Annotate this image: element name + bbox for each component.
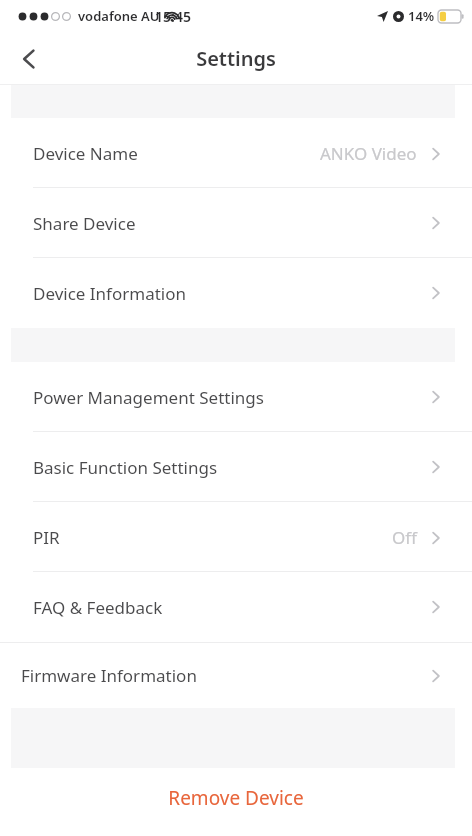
button[interactable]: Device Name <box>0 118 472 188</box>
button[interactable]: Back <box>0 32 58 85</box>
staticText: Off <box>392 526 417 549</box>
button[interactable]: Share Device <box>0 188 472 258</box>
staticText: 15:45 <box>155 7 191 26</box>
button[interactable]: Power Management Settings <box>0 362 472 432</box>
staticText: Remove Device <box>168 785 304 811</box>
button[interactable]: Firmware Information <box>0 643 472 708</box>
staticText: ANKO Video <box>320 142 417 165</box>
button[interactable]: Device Information <box>0 258 472 328</box>
staticText: Basic Function Settings <box>33 456 218 479</box>
staticText: Power Management Settings <box>33 386 264 409</box>
button[interactable]: Basic Function Settings <box>0 432 472 502</box>
staticText: vodafone AU <box>78 7 160 25</box>
staticText: Device Information <box>33 282 187 305</box>
staticText: Device Name <box>33 142 138 165</box>
staticText: FAQ & Feedback <box>33 596 163 619</box>
staticText: 14% <box>408 7 435 25</box>
staticText: Firmware Information <box>21 664 197 687</box>
staticText: Share Device <box>33 212 136 235</box>
button[interactable]: PIR <box>0 502 472 572</box>
button[interactable]: FAQ & Feedback <box>0 572 472 642</box>
staticText: PIR <box>33 526 60 549</box>
staticText: Settings <box>196 45 276 72</box>
button[interactable]: Remove Device <box>0 768 472 828</box>
